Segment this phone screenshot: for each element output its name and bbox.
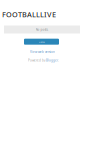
staticText: No posts. bbox=[35, 27, 48, 31]
staticText: FOOTBALLLIVE bbox=[2, 9, 56, 19]
staticText: Blogger bbox=[46, 58, 58, 62]
staticText: . bbox=[58, 58, 59, 62]
staticText: Home bbox=[38, 40, 44, 43]
button[interactable]: View web version bbox=[27, 50, 57, 54]
staticText: Powered by bbox=[28, 58, 46, 62]
button[interactable]: Home bbox=[24, 39, 59, 45]
button[interactable]: Blogger bbox=[46, 58, 58, 62]
staticText: View web version bbox=[30, 50, 55, 54]
